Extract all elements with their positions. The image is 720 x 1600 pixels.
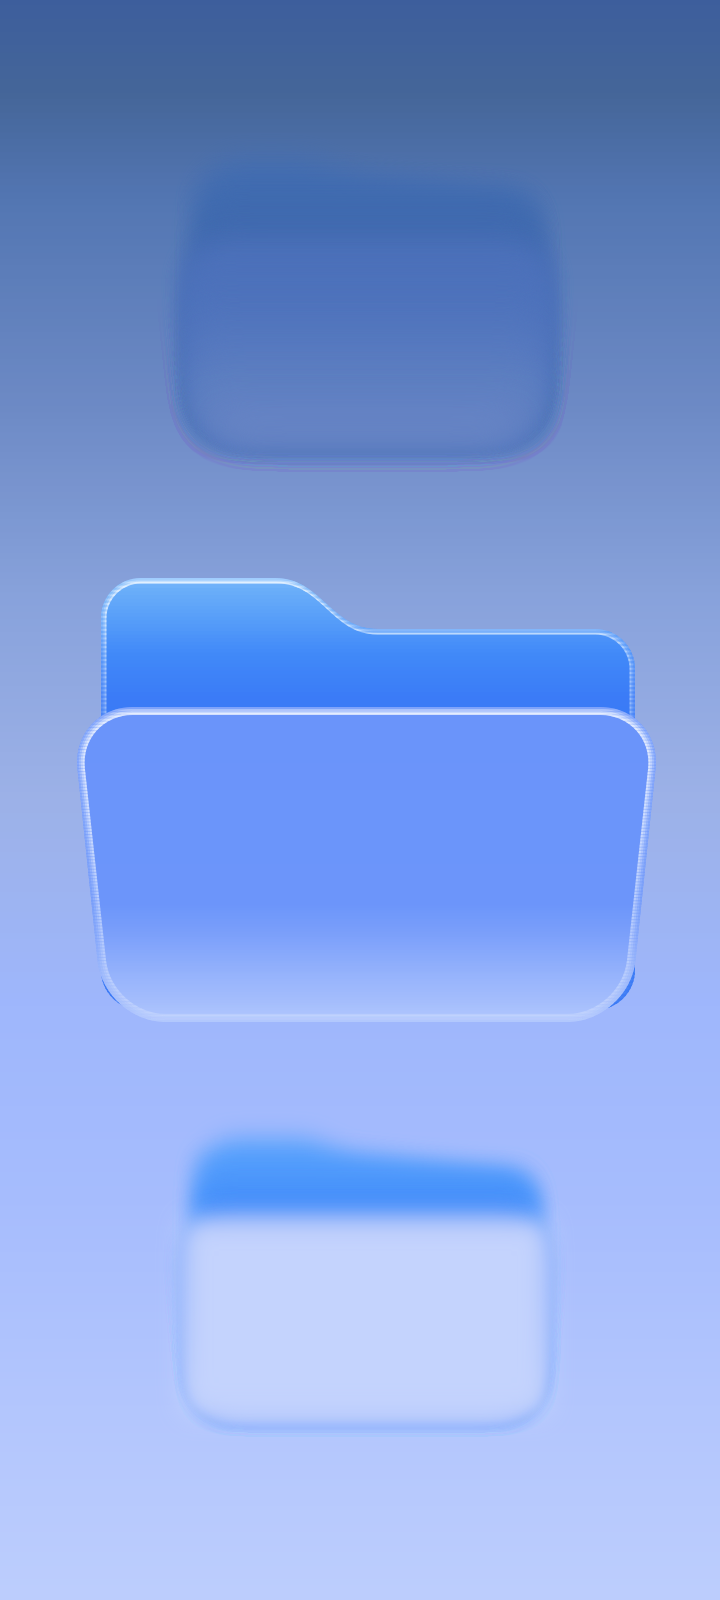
button[interactable]: Folder bbox=[71, 578, 662, 1022]
